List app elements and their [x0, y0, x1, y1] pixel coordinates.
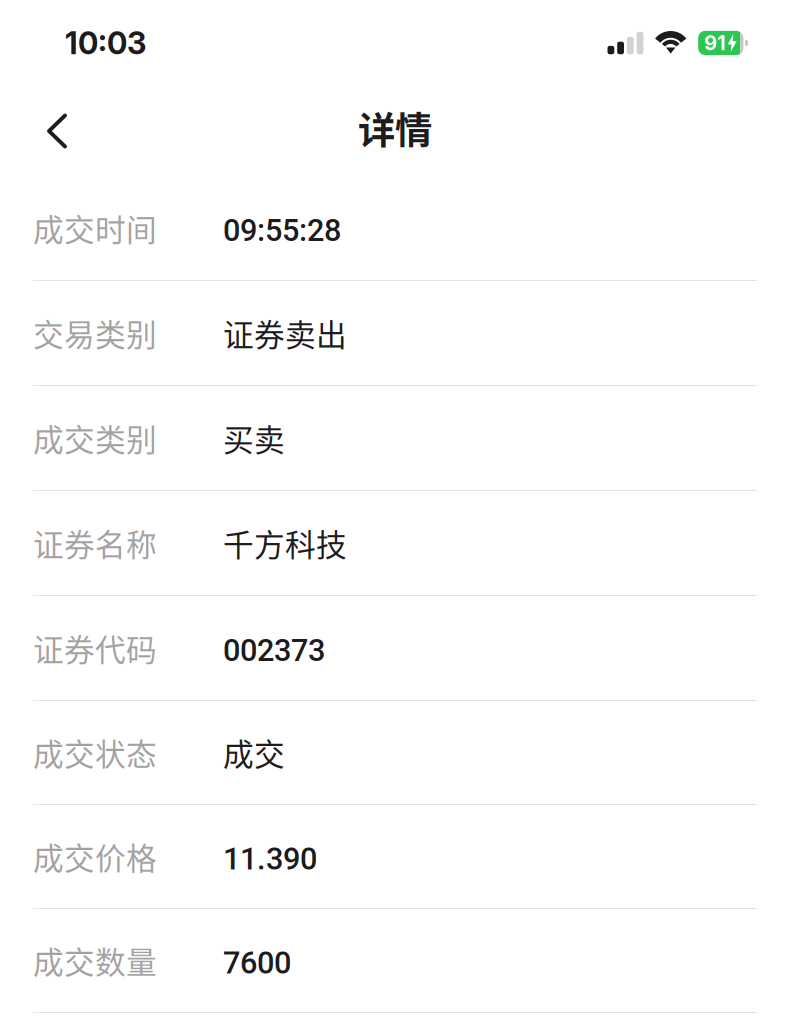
staticText: 千方科技: [223, 521, 347, 565]
button[interactable]: Back: [0, 98, 93, 161]
staticText: 成交价格: [33, 834, 157, 879]
staticText: 09:55:28: [223, 212, 341, 248]
staticText: 成交类别: [33, 416, 157, 460]
staticText: 买卖: [223, 416, 285, 460]
staticText: 交易类别: [33, 311, 157, 355]
staticText: 成交数量: [33, 938, 157, 983]
staticText: 91: [704, 31, 726, 55]
staticText: 7600: [223, 945, 291, 981]
staticText: 成交状态: [33, 730, 157, 775]
staticText: 10:03: [65, 24, 146, 61]
staticText: 证券卖出: [223, 311, 347, 355]
staticText: 证券代码: [33, 626, 157, 670]
staticText: 详情: [358, 101, 432, 155]
staticText: 成交: [223, 730, 285, 775]
staticText: 成交时间: [33, 206, 157, 250]
staticText: 证券名称: [33, 521, 157, 565]
staticText: 002373: [223, 632, 325, 668]
staticText: 11.390: [223, 841, 317, 877]
